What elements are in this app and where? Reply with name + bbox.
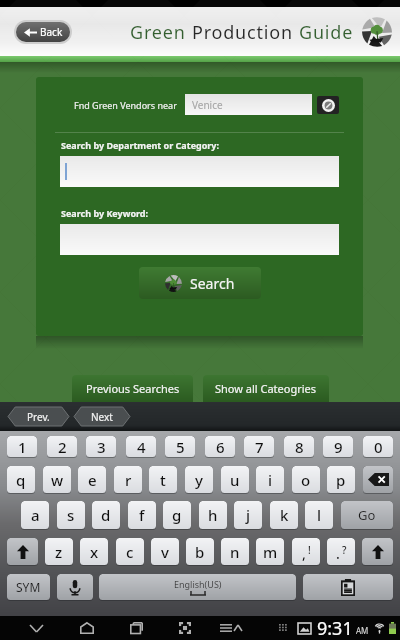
button[interactable]: p	[327, 466, 355, 493]
staticText: Fnd Green Vendors near	[74, 99, 177, 111]
button[interactable]: 7	[244, 436, 274, 457]
button[interactable]: Menu	[220, 617, 242, 639]
button[interactable]: h	[199, 501, 227, 529]
button[interactable]: 2	[47, 436, 77, 457]
staticText: r	[125, 470, 132, 490]
staticText: c	[126, 542, 134, 562]
button[interactable]: e	[78, 466, 106, 493]
staticText: 1	[18, 437, 27, 457]
button[interactable]: n	[221, 538, 249, 565]
button[interactable]: ,	[292, 538, 320, 565]
button[interactable]: Voice input	[57, 574, 93, 600]
button[interactable]: 6	[205, 436, 235, 457]
staticText: ?	[342, 543, 347, 557]
button[interactable]: o	[292, 466, 320, 493]
staticText: Go	[358, 506, 376, 524]
staticText: 9	[334, 437, 343, 457]
staticText: Prev.	[27, 410, 50, 424]
staticText: 8	[295, 437, 304, 457]
button[interactable]: r	[114, 466, 142, 493]
button[interactable]: 9	[323, 436, 353, 457]
staticText: 3	[97, 437, 106, 457]
button[interactable]: Search	[139, 267, 261, 299]
button[interactable]: Screenshot	[174, 617, 196, 639]
staticText: SYM	[16, 579, 41, 595]
button[interactable]: i	[256, 466, 284, 493]
button[interactable]: 1	[7, 436, 37, 457]
button[interactable]: Go	[341, 501, 393, 529]
button[interactable]: Backspace	[363, 466, 393, 493]
button[interactable]: l	[305, 501, 333, 529]
staticText: n	[230, 542, 240, 562]
button[interactable]: Shift	[7, 538, 38, 565]
button[interactable]: q	[7, 466, 35, 493]
button[interactable]: Shift	[362, 538, 393, 565]
staticText: s	[67, 505, 75, 525]
staticText: Search by Department or Category:	[61, 139, 220, 151]
staticText: English(US)	[174, 578, 222, 590]
staticText: AM	[356, 625, 369, 636]
button[interactable]: Prev.	[8, 407, 69, 426]
button[interactable]: .	[327, 538, 355, 565]
staticText: h	[208, 505, 218, 525]
button[interactable]: g	[163, 501, 191, 529]
button[interactable]: 4	[126, 436, 156, 457]
staticText: 9:31	[317, 616, 353, 640]
button[interactable]: Space	[99, 574, 296, 600]
button[interactable]: Back	[16, 22, 70, 42]
button[interactable]: s	[57, 501, 85, 529]
staticText: d	[101, 505, 111, 525]
button[interactable]: 8	[284, 436, 314, 457]
staticText: u	[230, 470, 240, 490]
button[interactable]: SYM	[7, 574, 50, 600]
button[interactable]: z	[45, 538, 73, 565]
staticText: Previous Searches	[86, 381, 180, 396]
button[interactable]: Use my location	[317, 96, 339, 114]
button[interactable]: w	[43, 466, 71, 493]
staticText: k	[280, 505, 289, 525]
staticText: .	[336, 544, 340, 563]
button[interactable]: 3	[86, 436, 116, 457]
button[interactable]: u	[221, 466, 249, 493]
button[interactable]	[60, 224, 339, 255]
button[interactable]: 0	[363, 436, 393, 457]
button[interactable]: Show all Cateogries	[203, 375, 329, 402]
staticText: m	[263, 542, 278, 562]
button[interactable]: Previous Searches	[72, 375, 193, 402]
staticText: ,	[302, 544, 306, 563]
staticText: p	[336, 470, 346, 490]
button[interactable]	[60, 156, 339, 187]
staticText: Venice	[192, 98, 223, 112]
button[interactable]: Next	[74, 407, 130, 426]
staticText: Production	[192, 20, 299, 45]
staticText: q	[16, 470, 26, 490]
button[interactable]: Hide keyboard	[25, 617, 47, 639]
button[interactable]: 5	[165, 436, 195, 457]
staticText: g	[172, 505, 182, 525]
staticText: !	[308, 543, 311, 557]
staticText: 2	[58, 437, 67, 457]
button[interactable]: d	[92, 501, 120, 529]
button[interactable]: y	[185, 466, 213, 493]
button[interactable]: t	[149, 466, 177, 493]
button[interactable]: j	[234, 501, 262, 529]
staticText: Search	[190, 274, 235, 293]
button[interactable]: f	[128, 501, 156, 529]
button[interactable]: Venice	[185, 94, 312, 115]
button[interactable]: Recent apps	[125, 617, 147, 639]
button[interactable]: x	[80, 538, 108, 565]
staticText: l	[317, 505, 322, 525]
button[interactable]: v	[151, 538, 179, 565]
button[interactable]: a	[21, 501, 49, 529]
button[interactable]: c	[116, 538, 144, 565]
button[interactable]: b	[186, 538, 214, 565]
staticText: e	[88, 470, 97, 490]
button[interactable]: Home	[76, 617, 98, 639]
button[interactable]: Clipboard	[303, 574, 393, 600]
staticText: Show all Cateogries	[215, 381, 317, 396]
staticText: Back	[40, 25, 63, 39]
staticText: o	[301, 470, 311, 490]
button[interactable]: m	[256, 538, 284, 565]
button[interactable]: k	[270, 501, 298, 529]
staticText: 0	[374, 437, 383, 457]
